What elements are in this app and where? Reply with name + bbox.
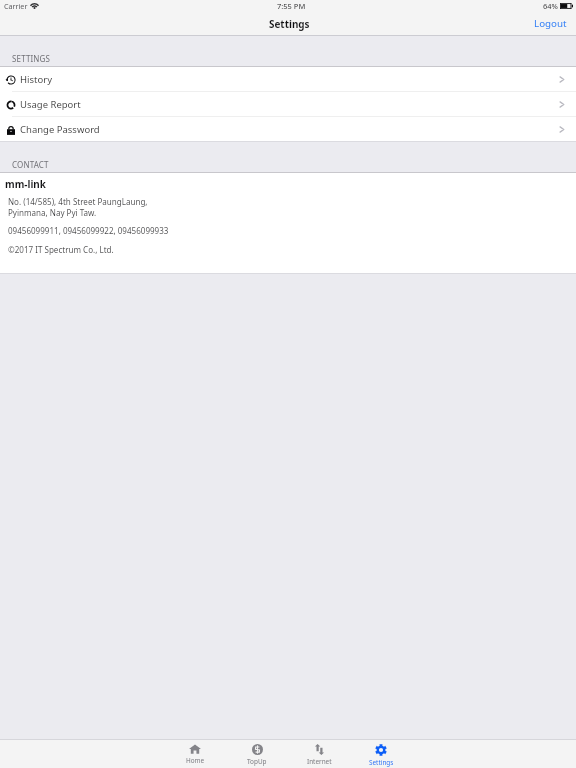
staticText: SETTINGS [12,53,51,64]
staticText: Carrier [4,1,28,11]
button[interactable]: Home [164,740,226,765]
staticText: Change Password [20,123,100,136]
button[interactable]: Top up [226,740,288,766]
staticText: Internet [307,757,332,766]
staticText: Pyinmana, Nay Pyi Taw. [8,207,97,218]
staticText: TopUp [247,757,267,766]
button[interactable]: History [0,67,576,92]
staticText: 7:55 PM [277,1,306,11]
staticText: 64% [543,1,558,11]
button[interactable]: Usage Report [0,92,576,117]
staticText: Usage Report [20,98,81,111]
button[interactable]: Logout [523,14,576,34]
staticText: Settings [369,758,394,767]
staticText: Settings [269,17,310,30]
staticText: History [20,73,52,86]
button[interactable]: Change Password [0,117,576,142]
staticText: 09456099911, 09456099922, 09456099933 [8,225,169,236]
button[interactable]: Internet [288,740,350,766]
staticText: No. (14/585), 4th Street PaungLaung, [8,196,148,207]
staticText: Logout [534,17,567,30]
staticText: Home [186,756,205,765]
staticText: mm-link [5,177,46,190]
staticText: CONTACT [12,159,49,170]
button[interactable]: Settings [350,740,412,767]
staticText: ©2017 IT Spectrum Co., Ltd. [8,244,114,255]
